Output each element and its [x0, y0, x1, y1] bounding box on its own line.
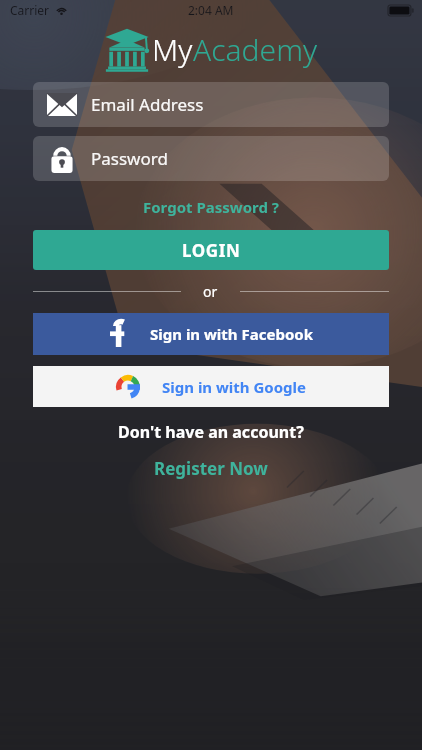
staticText: My — [152, 29, 193, 70]
button[interactable]: Register Now — [142, 453, 280, 484]
button[interactable]: LOGIN — [33, 230, 389, 270]
button[interactable]: Google — [33, 366, 389, 407]
staticText: Carrier — [10, 2, 50, 18]
staticText: 2:04 AM — [188, 2, 234, 18]
staticText: Academy — [193, 29, 317, 70]
other: Google — [116, 375, 140, 399]
staticText: Forgot Password ? — [143, 197, 279, 217]
staticText: Password — [91, 147, 168, 170]
button[interactable]: Forgot Password ? — [133, 193, 289, 221]
button[interactable]: Email — [33, 82, 389, 127]
staticText: Sign in with Google — [162, 377, 307, 397]
button[interactable]: Facebook — [33, 313, 389, 355]
other: Facebook — [109, 321, 126, 347]
staticText: or — [203, 282, 218, 301]
button[interactable]: Password — [33, 136, 389, 181]
staticText: Register Now — [154, 457, 268, 480]
staticText: Sign in with Facebook — [150, 324, 313, 344]
staticText: LOGIN — [182, 239, 241, 262]
staticText: Email Address — [91, 93, 204, 116]
staticText: Don't have an account? — [118, 421, 304, 443]
other: MyAcademy logo — [105, 26, 149, 72]
